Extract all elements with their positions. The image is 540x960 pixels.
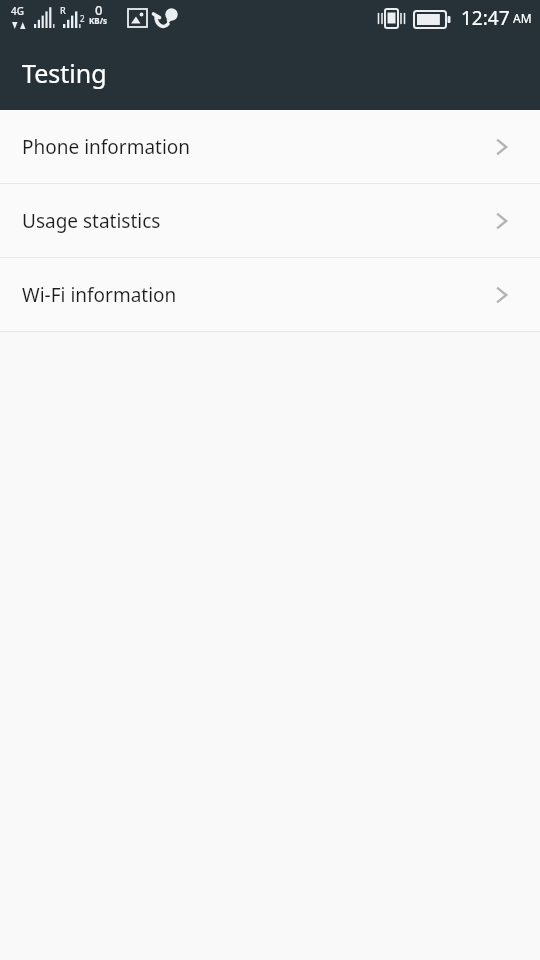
button[interactable]: Phone information — [0, 110, 540, 183]
staticText: Usage statistics — [22, 208, 492, 234]
staticText: 12:47 — [461, 5, 510, 31]
staticText: Testing — [22, 56, 107, 90]
staticText: AM — [513, 10, 532, 26]
staticText: 2 — [80, 13, 85, 24]
staticText: Phone information — [22, 134, 492, 160]
staticText: KB/s — [89, 15, 107, 26]
staticText: R — [60, 4, 66, 16]
staticText: 0 — [95, 1, 103, 19]
button[interactable]: Usage statistics — [0, 184, 540, 257]
staticText: Wi-Fi information — [22, 282, 492, 308]
button[interactable]: Wi-Fi information — [0, 258, 540, 331]
staticText: 4G — [11, 4, 24, 18]
